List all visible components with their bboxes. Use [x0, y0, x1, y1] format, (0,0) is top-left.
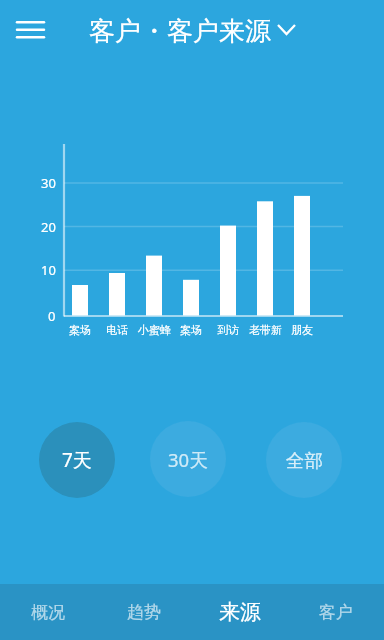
staticText: 30天 [168, 447, 208, 472]
staticText: 7天 [62, 447, 92, 473]
staticText: 来源 [219, 599, 261, 625]
button[interactable]: 全部 [266, 422, 342, 498]
staticText: 0 [48, 307, 56, 325]
staticText: 10 [41, 261, 56, 279]
staticText: 电话 [106, 323, 128, 337]
staticText: 朋友 [291, 323, 313, 337]
button[interactable]: 趋势 [96, 584, 192, 640]
button[interactable]: 概况 [0, 584, 96, 640]
staticText: 案场 [180, 323, 202, 337]
staticText: 20 [41, 218, 56, 236]
staticText: 案场 [69, 323, 91, 337]
button[interactable]: 7天 [39, 422, 115, 498]
button[interactable]: 来源 [192, 584, 288, 640]
staticText: 趋势 [127, 602, 161, 623]
button[interactable]: 客户 [288, 584, 384, 640]
staticText: 30 [41, 174, 56, 192]
staticText: 客户・客户来源 [89, 15, 271, 48]
staticText: 全部 [286, 449, 323, 472]
staticText: 概况 [31, 602, 65, 623]
button[interactable]: 30天 [150, 421, 226, 497]
staticText: 客户 [319, 602, 353, 623]
button[interactable] [8, 12, 52, 48]
staticText: 到访 [217, 323, 239, 337]
button[interactable]: 客户・客户来源 [89, 0, 295, 62]
staticText: 老带新 [249, 323, 282, 337]
staticText: 小蜜蜂 [138, 323, 171, 337]
